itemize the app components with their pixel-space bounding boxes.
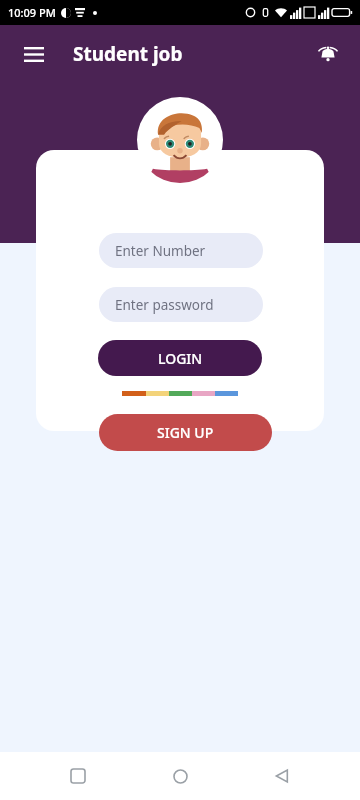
staticText: SIGN UP	[157, 423, 214, 442]
button[interactable]: Home	[156, 752, 204, 800]
staticText: Enter Number	[115, 242, 206, 260]
staticText: Enter password	[115, 296, 214, 314]
button[interactable]: Notifications	[306, 32, 350, 76]
button[interactable]: Recent apps	[54, 752, 102, 800]
button[interactable]: Back	[258, 752, 306, 800]
button[interactable]: Enter password	[99, 287, 263, 322]
button[interactable]: LOGIN	[98, 340, 262, 376]
staticText: 10:09 PM	[8, 5, 56, 20]
button[interactable]: SIGN UP	[99, 414, 272, 451]
button[interactable]: Open navigation menu	[12, 32, 56, 76]
staticText: LOGIN	[158, 349, 203, 368]
staticText: Student job	[73, 41, 183, 67]
button[interactable]: Enter Number	[99, 233, 263, 268]
